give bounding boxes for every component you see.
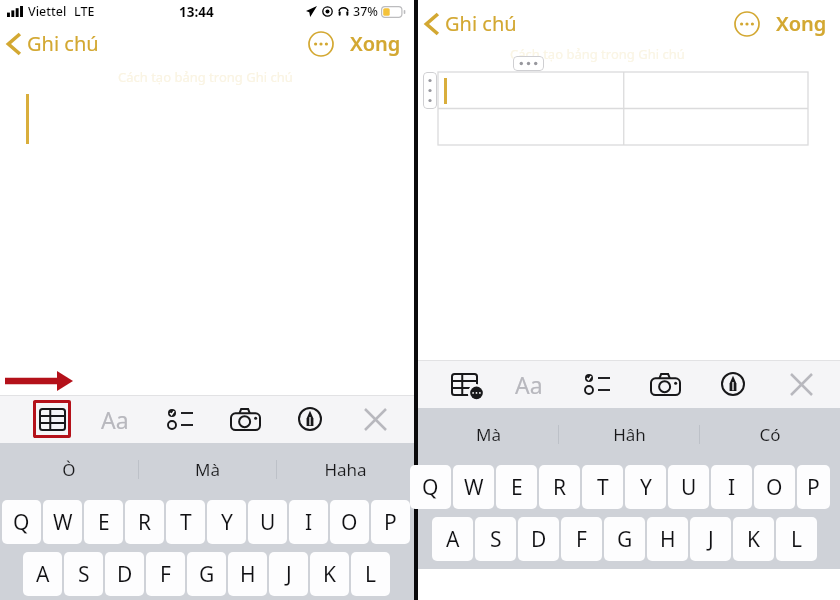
button[interactable]: I bbox=[289, 500, 328, 544]
staticText: S bbox=[78, 560, 90, 589]
button[interactable]: Camera bbox=[644, 363, 686, 405]
button[interactable]: Mà bbox=[139, 443, 276, 495]
button[interactable]: K bbox=[310, 552, 349, 596]
staticText: Có bbox=[759, 423, 781, 446]
button[interactable]: Camera bbox=[224, 398, 266, 440]
staticText: Xong bbox=[350, 30, 401, 57]
button[interactable]: Markup bbox=[289, 398, 331, 440]
button[interactable]: More options bbox=[308, 31, 334, 57]
staticText: Ghi chú bbox=[27, 30, 99, 57]
button[interactable]: Ghi chú bbox=[425, 8, 525, 39]
staticText: H bbox=[240, 560, 256, 589]
staticText: D bbox=[531, 525, 547, 554]
button[interactable]: A bbox=[23, 552, 62, 596]
button[interactable]: L bbox=[351, 552, 390, 596]
staticText: K bbox=[747, 525, 760, 554]
button[interactable]: Y bbox=[625, 465, 666, 509]
button[interactable]: S bbox=[64, 552, 103, 596]
button[interactable]: G bbox=[604, 517, 645, 561]
staticText: P bbox=[807, 473, 820, 502]
button[interactable]: Format text bbox=[508, 363, 550, 405]
staticText: E bbox=[511, 473, 523, 502]
button[interactable]: P bbox=[371, 500, 410, 544]
button[interactable]: Hâh bbox=[559, 408, 699, 460]
staticText: K bbox=[323, 560, 336, 589]
button[interactable]: Markup bbox=[712, 363, 754, 405]
staticText: 37% bbox=[353, 3, 378, 20]
staticText: G bbox=[199, 560, 215, 589]
button[interactable]: J bbox=[269, 552, 308, 596]
button[interactable]: Checklist bbox=[159, 398, 201, 440]
button[interactable]: Format text bbox=[94, 398, 136, 440]
button[interactable]: I bbox=[711, 465, 752, 509]
button[interactable]: S bbox=[475, 517, 516, 561]
button[interactable]: O bbox=[330, 500, 369, 544]
button[interactable]: H bbox=[228, 552, 267, 596]
button[interactable]: Y bbox=[207, 500, 246, 544]
staticText: Hâh bbox=[613, 423, 646, 446]
button[interactable]: D bbox=[518, 517, 559, 561]
button[interactable]: U bbox=[248, 500, 287, 544]
staticText: Aa bbox=[101, 404, 129, 435]
button[interactable]: Mà bbox=[418, 408, 558, 460]
button[interactable]: Checklist bbox=[576, 363, 618, 405]
button[interactable]: R bbox=[125, 500, 164, 544]
button[interactable]: T bbox=[166, 500, 205, 544]
button[interactable]: Insert table bbox=[33, 400, 71, 438]
staticText: W bbox=[53, 508, 73, 537]
staticText: L bbox=[365, 560, 377, 589]
button[interactable]: A bbox=[432, 517, 473, 561]
button[interactable]: F bbox=[561, 517, 602, 561]
button[interactable]: T bbox=[582, 465, 623, 509]
staticText: F bbox=[576, 525, 587, 554]
staticText: LTE bbox=[74, 3, 95, 20]
button[interactable]: E bbox=[496, 465, 537, 509]
button[interactable]: Column options bbox=[513, 56, 544, 71]
staticText: W bbox=[464, 473, 484, 502]
staticText: Y bbox=[221, 508, 233, 537]
button[interactable]: Close keyboard bbox=[780, 363, 822, 405]
button[interactable]: More options bbox=[734, 11, 760, 37]
button[interactable]: Xong bbox=[773, 7, 830, 40]
button[interactable]: Xong bbox=[347, 27, 404, 60]
staticText: Haha bbox=[324, 458, 367, 481]
button[interactable]: Insert table bbox=[445, 365, 483, 403]
staticText: H bbox=[660, 525, 676, 554]
button[interactable]: O bbox=[754, 465, 795, 509]
staticText: T bbox=[180, 508, 192, 537]
button[interactable]: G bbox=[187, 552, 226, 596]
button[interactable]: E bbox=[84, 500, 123, 544]
button[interactable]: Q bbox=[2, 500, 41, 544]
button[interactable]: F bbox=[146, 552, 185, 596]
button[interactable]: Close keyboard bbox=[354, 398, 396, 440]
button[interactable]: Có bbox=[700, 408, 840, 460]
button[interactable]: P bbox=[797, 465, 830, 509]
button[interactable]: W bbox=[453, 465, 494, 509]
button[interactable]: L bbox=[776, 517, 817, 561]
staticText: Y bbox=[640, 473, 652, 502]
button[interactable]: Q bbox=[410, 465, 451, 509]
button[interactable]: H bbox=[647, 517, 688, 561]
staticText: D bbox=[117, 560, 133, 589]
button[interactable]: W bbox=[43, 500, 82, 544]
staticText: R bbox=[138, 508, 152, 537]
staticText: Mà bbox=[195, 458, 220, 481]
button[interactable]: Ò bbox=[0, 443, 138, 495]
button[interactable]: K bbox=[733, 517, 774, 561]
button[interactable]: J bbox=[690, 517, 731, 561]
button[interactable]: Row options bbox=[423, 72, 437, 109]
button[interactable]: Ghi chú bbox=[7, 28, 107, 59]
staticText: Viettel bbox=[28, 3, 67, 20]
staticText: Aa bbox=[515, 369, 543, 400]
button[interactable]: D bbox=[105, 552, 144, 596]
button[interactable]: Haha bbox=[277, 443, 414, 495]
staticText: S bbox=[490, 525, 502, 554]
button[interactable]: U bbox=[668, 465, 709, 509]
staticText: A bbox=[36, 560, 50, 589]
staticText: Mà bbox=[476, 423, 501, 446]
staticText: Q bbox=[13, 508, 30, 537]
staticText: J bbox=[708, 525, 714, 554]
staticText: L bbox=[791, 525, 803, 554]
staticText: A bbox=[446, 525, 460, 554]
button[interactable]: R bbox=[539, 465, 580, 509]
